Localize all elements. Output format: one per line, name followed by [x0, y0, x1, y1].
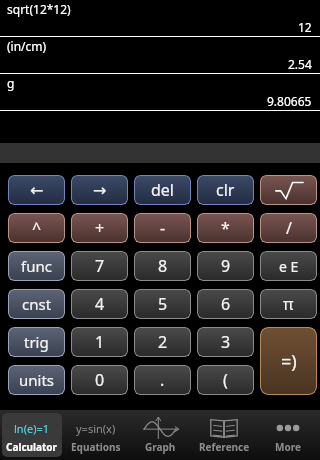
button[interactable]: 1: [72, 328, 127, 356]
staticText: y=sin(x): [76, 421, 116, 436]
staticText: /: [286, 217, 292, 239]
staticText: 6: [221, 293, 231, 315]
staticText: →: [93, 181, 107, 200]
staticText: 0: [95, 369, 105, 391]
button[interactable]: +: [72, 214, 127, 242]
staticText: Reference: [199, 440, 250, 454]
button[interactable]: trig: [9, 328, 64, 356]
button[interactable]: 6: [198, 290, 253, 318]
button[interactable]: 7: [72, 252, 127, 280]
staticText: 4: [95, 293, 105, 315]
button[interactable]: -: [135, 214, 190, 242]
button[interactable]: (: [198, 366, 253, 394]
button[interactable]: 4: [72, 290, 127, 318]
button[interactable]: y=sin(x): [66, 413, 126, 457]
staticText: .: [160, 369, 165, 391]
staticText: +: [95, 217, 105, 239]
staticText: sqrt(12*12): [7, 1, 71, 17]
staticText: ln(e)=1: [14, 421, 50, 436]
button[interactable]: ln(e)=1: [2, 413, 62, 457]
staticText: 2.54: [288, 56, 312, 72]
staticText: *: [221, 217, 230, 239]
button[interactable]: Right: [72, 176, 127, 204]
staticText: del: [151, 179, 174, 201]
staticText: 2: [158, 331, 168, 353]
button[interactable]: =): [261, 328, 316, 394]
button[interactable]: More: [258, 413, 318, 457]
button[interactable]: del: [135, 176, 190, 204]
staticText: units: [19, 370, 55, 390]
button[interactable]: 3: [198, 328, 253, 356]
staticText: =): [281, 349, 297, 374]
button[interactable]: 5: [135, 290, 190, 318]
staticText: e E: [279, 257, 299, 276]
button[interactable]: .: [135, 366, 190, 394]
staticText: 8: [158, 255, 168, 277]
button[interactable]: π: [261, 290, 316, 318]
button[interactable]: func: [9, 252, 64, 280]
staticText: g: [7, 75, 15, 91]
button[interactable]: units: [9, 366, 64, 394]
staticText: func: [21, 256, 52, 276]
staticText: 1: [95, 331, 105, 353]
staticText: 3: [221, 331, 231, 353]
button[interactable]: /: [261, 214, 316, 242]
button[interactable]: 9: [198, 252, 253, 280]
button[interactable]: Graph: [130, 413, 190, 457]
staticText: (: [223, 369, 228, 391]
staticText: clr: [216, 179, 235, 201]
button[interactable]: 0: [72, 366, 127, 394]
staticText: π: [283, 293, 294, 315]
staticText: trig: [24, 332, 49, 352]
button[interactable]: ^: [9, 214, 64, 242]
button[interactable]: Reference: [194, 413, 254, 457]
button[interactable]: 2: [135, 328, 190, 356]
button[interactable]: Left: [9, 176, 64, 204]
staticText: 9: [221, 255, 231, 277]
button[interactable]: 8: [135, 252, 190, 280]
staticText: 12: [298, 19, 312, 35]
staticText: (in/cm): [7, 38, 47, 54]
staticText: Equations: [71, 440, 121, 454]
button[interactable]: Square root: [261, 176, 316, 204]
staticText: Graph: [145, 440, 176, 454]
button[interactable]: clr: [198, 176, 253, 204]
button[interactable]: e E: [261, 252, 316, 280]
button[interactable]: *: [198, 214, 253, 242]
button[interactable]: cnst: [9, 290, 64, 318]
staticText: ^: [32, 217, 42, 239]
staticText: 7: [95, 255, 105, 277]
staticText: Calculator: [6, 440, 58, 454]
staticText: -: [160, 217, 166, 239]
staticText: 9.80665: [267, 93, 312, 109]
staticText: More: [275, 440, 301, 454]
staticText: ←: [30, 181, 44, 200]
staticText: cnst: [22, 294, 52, 314]
staticText: 5: [158, 293, 168, 315]
